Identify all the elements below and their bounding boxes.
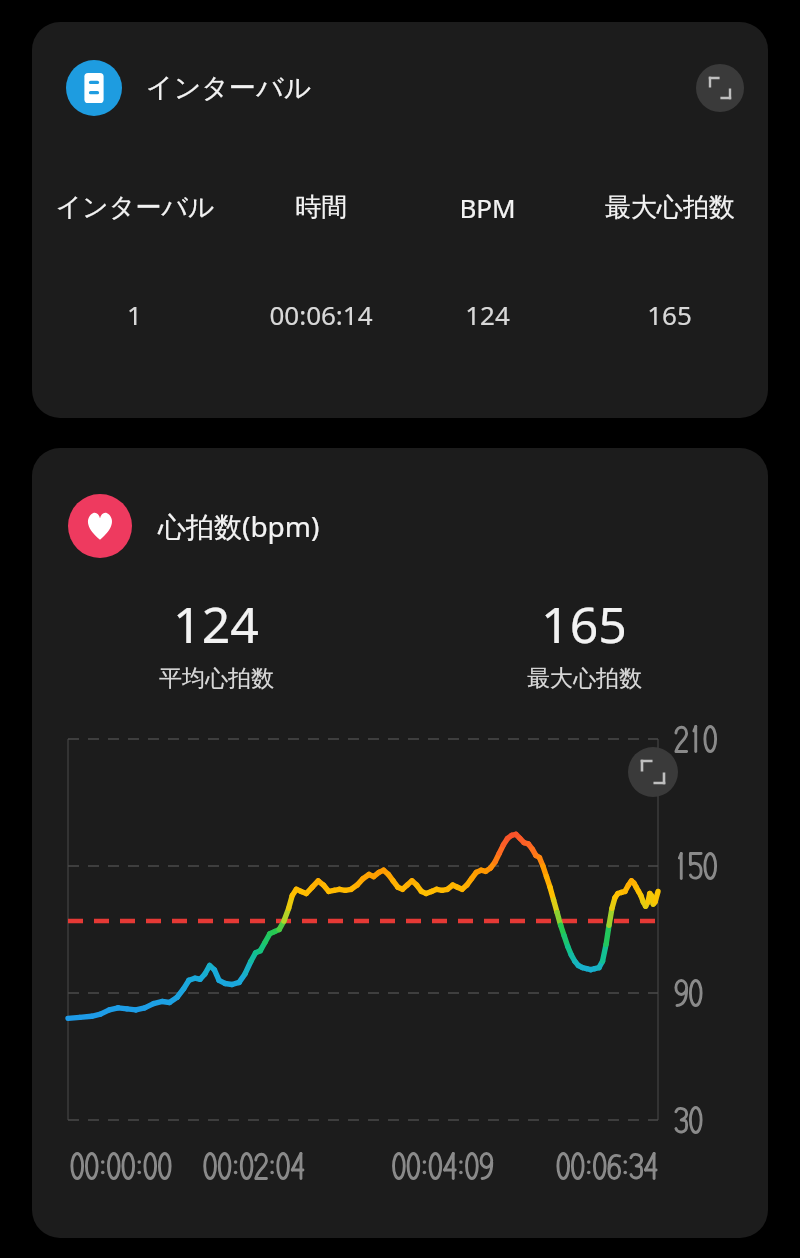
button[interactable]: Expand xyxy=(696,64,744,112)
staticText: 00:06:14 xyxy=(269,297,373,332)
staticText: 165 xyxy=(541,590,627,658)
button[interactable]: Expand chart xyxy=(628,747,678,797)
staticText: インターバル xyxy=(55,191,215,224)
staticText: 平均心拍数 xyxy=(159,664,274,693)
staticText: 165 xyxy=(647,297,692,332)
staticText: BPM xyxy=(459,190,516,225)
staticText: インターバル xyxy=(146,71,312,105)
staticText: 124 xyxy=(465,297,510,332)
staticText: 心拍数(bpm) xyxy=(158,507,320,545)
staticText: 1 xyxy=(127,297,142,332)
staticText: 124 xyxy=(173,590,259,658)
staticText: 最大心拍数 xyxy=(527,664,642,693)
staticText: 最大心拍数 xyxy=(605,191,735,224)
staticText: 時間 xyxy=(295,191,347,224)
